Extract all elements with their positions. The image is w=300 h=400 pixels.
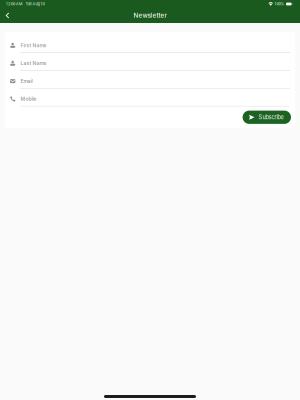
- staticText: Last Name: [20, 60, 46, 66]
- staticText: 100%: [274, 2, 284, 6]
- staticText: Tue Aug 10: [25, 2, 44, 6]
- staticText: First Name: [20, 42, 46, 48]
- button[interactable]: Last Name: [5, 56, 295, 74]
- staticText: Email: [20, 78, 32, 84]
- staticText: Newsletter: [133, 12, 166, 19]
- button[interactable]: Subscribe: [243, 111, 291, 124]
- staticText: Mobile: [20, 96, 36, 102]
- staticText: Subscribe: [258, 114, 283, 121]
- button[interactable]: Back: [0, 8, 22, 23]
- staticText: 12:00 AM: [6, 2, 22, 6]
- button[interactable]: Email: [5, 74, 295, 92]
- button[interactable]: First Name: [5, 38, 295, 56]
- button[interactable]: Mobile: [5, 92, 295, 110]
